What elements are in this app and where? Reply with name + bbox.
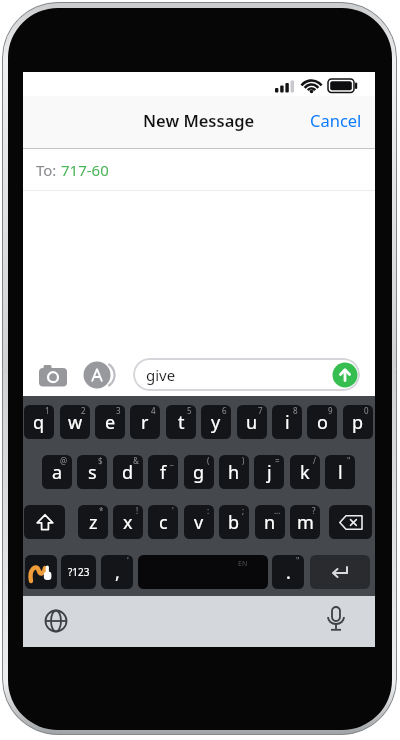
button[interactable]: 0 (343, 405, 373, 439)
button[interactable] (329, 505, 372, 539)
staticText: z (89, 510, 98, 535)
button[interactable]: * (78, 505, 108, 539)
staticText: d (122, 460, 134, 485)
staticText: ( (207, 455, 210, 466)
button[interactable]: 4 (130, 405, 160, 439)
staticText: k (300, 460, 310, 485)
staticText: y (211, 410, 221, 435)
button[interactable]: EN (138, 555, 268, 589)
staticText: ! (136, 505, 139, 516)
staticText: 7 (258, 405, 263, 416)
button[interactable] (310, 555, 370, 589)
button[interactable]: " (325, 455, 355, 489)
staticText: / (313, 455, 316, 466)
staticText: New Message (143, 109, 255, 131)
staticText: " (296, 555, 300, 566)
staticText: p (352, 410, 364, 435)
button[interactable] (44, 609, 68, 633)
staticText: x (123, 510, 133, 535)
button[interactable]: 2 (60, 405, 90, 439)
button[interactable]: / (290, 455, 320, 489)
button[interactable]: 7 (237, 405, 267, 439)
staticText: 9 (328, 405, 333, 416)
button[interactable]: 9 (307, 405, 337, 439)
staticText: 5 (187, 405, 192, 416)
staticText: b (228, 510, 240, 535)
staticText: . (286, 560, 291, 585)
button[interactable]: ' (101, 555, 133, 589)
staticText: ' (127, 555, 129, 566)
staticText: h (228, 460, 240, 485)
staticText: r (141, 410, 149, 435)
button[interactable] (323, 606, 349, 634)
button[interactable]: $ (77, 455, 107, 489)
staticText: w (68, 410, 83, 435)
button[interactable]: & (113, 455, 143, 489)
button[interactable]: ) (219, 455, 249, 489)
button[interactable]: 1 (24, 405, 54, 439)
button[interactable]: ( (184, 455, 214, 489)
staticText: EN (238, 559, 248, 569)
button[interactable]: give (133, 358, 360, 391)
staticText: 4 (151, 405, 156, 416)
button[interactable]: ! (113, 505, 143, 539)
button[interactable]: _ (148, 455, 178, 489)
staticText: a (52, 460, 63, 485)
button[interactable]: 5 (166, 405, 196, 439)
button[interactable]: = (254, 455, 284, 489)
staticText: o (317, 410, 328, 435)
button[interactable]: : (184, 505, 214, 539)
staticText: 2 (81, 405, 86, 416)
staticText: c (159, 510, 168, 535)
button[interactable] (81, 360, 117, 390)
staticText: v (194, 510, 204, 535)
staticText: $ (98, 455, 103, 466)
staticText: give (146, 365, 176, 385)
staticText: i (285, 410, 290, 435)
staticText: l (338, 460, 343, 485)
staticText: ) (242, 455, 245, 466)
button[interactable]: … (255, 505, 285, 539)
button[interactable]: 8 (272, 405, 302, 439)
staticText: To: (36, 160, 61, 180)
button[interactable]: 3 (95, 405, 125, 439)
staticText: , (115, 560, 120, 585)
button[interactable]: 6 (201, 405, 231, 439)
staticText: ?123 (68, 565, 90, 579)
staticText: 6 (222, 405, 227, 416)
staticText: _ (170, 455, 174, 466)
button[interactable]: ' (148, 505, 178, 539)
staticText: s (88, 460, 97, 485)
staticText: " (347, 455, 351, 466)
staticText: f (160, 460, 167, 485)
staticText: u (246, 410, 258, 435)
button[interactable]: ; (219, 505, 249, 539)
staticText: 0 (364, 405, 369, 416)
button[interactable] (25, 555, 57, 589)
staticText: @ (60, 455, 68, 466)
button[interactable]: " (272, 555, 304, 589)
button[interactable]: @ (42, 455, 72, 489)
staticText: n (264, 510, 276, 535)
button[interactable] (332, 362, 358, 388)
staticText: = (275, 455, 280, 466)
button[interactable] (24, 505, 65, 539)
button[interactable] (39, 364, 69, 388)
staticText: q (33, 410, 45, 435)
staticText: : (207, 505, 210, 516)
button[interactable]: Cancel (310, 109, 362, 131)
button[interactable]: ?123 (61, 555, 96, 589)
staticText: ' (172, 505, 174, 516)
staticText: 8 (293, 405, 298, 416)
staticText: j (267, 460, 272, 485)
staticText: e (105, 410, 116, 435)
staticText: 3 (116, 405, 121, 416)
staticText: g (193, 460, 205, 485)
button[interactable]: ? (290, 505, 320, 539)
staticText: & (133, 455, 139, 466)
staticText: ; (242, 505, 245, 516)
staticText: * (99, 505, 104, 516)
staticText: 717-60 (61, 160, 109, 180)
staticText: m (297, 510, 314, 535)
staticText: … (274, 505, 281, 516)
